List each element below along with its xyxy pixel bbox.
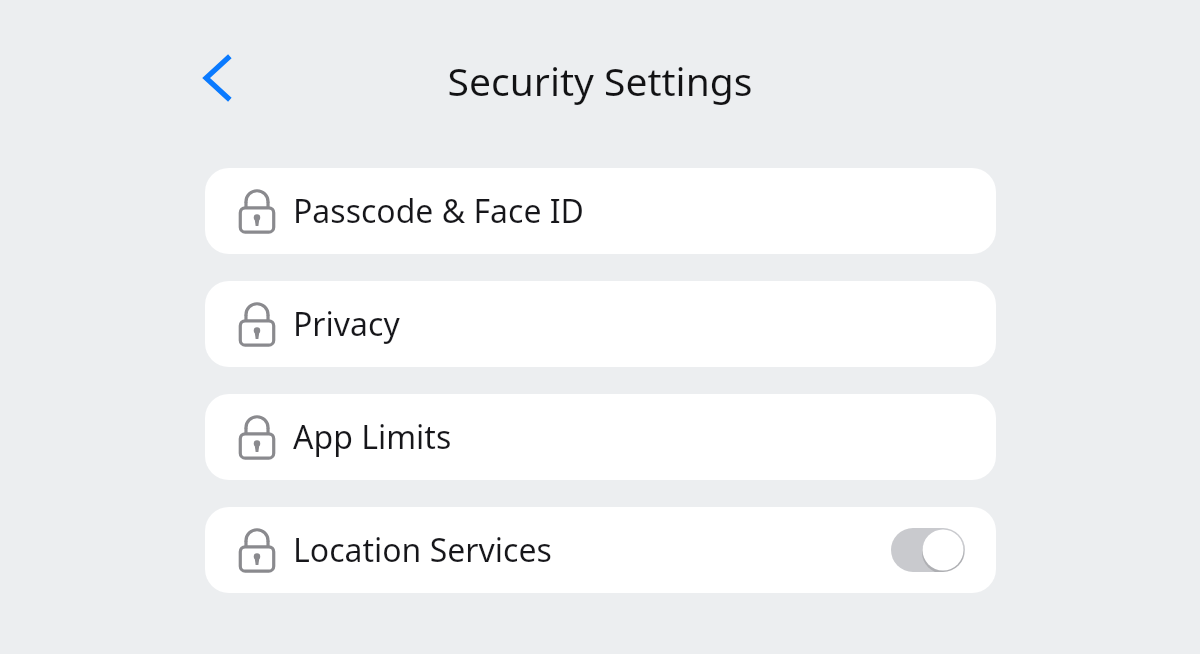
staticText: Privacy	[293, 302, 400, 346]
button[interactable]: Location Services	[205, 507, 996, 593]
staticText: App Limits	[293, 415, 452, 459]
staticText: Passcode & Face ID	[293, 189, 584, 233]
button[interactable]: Passcode & Face ID	[205, 168, 996, 254]
button[interactable]: Toggle Location Services	[891, 528, 965, 572]
button[interactable]: Privacy	[205, 281, 996, 367]
button[interactable]: App Limits	[205, 394, 996, 480]
staticText: Location Services	[293, 528, 552, 572]
staticText: Security Settings	[0, 54, 1200, 107]
button[interactable]: Back	[188, 48, 246, 108]
